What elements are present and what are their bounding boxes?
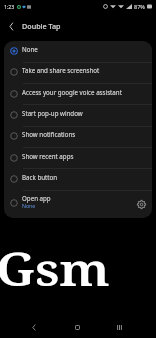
staticText: Back button: [22, 173, 58, 181]
staticText: 87%: [134, 3, 145, 10]
button[interactable]: Settings: [134, 197, 148, 211]
button[interactable]: Back: [23, 316, 45, 338]
button[interactable]: Show notifications: [4, 126, 152, 147]
staticText: Open app: [22, 194, 51, 202]
button[interactable]: Recents: [108, 316, 130, 338]
staticText: Gsm: [0, 238, 110, 299]
staticText: None: [22, 202, 36, 209]
button[interactable]: None: [4, 41, 152, 62]
button[interactable]: Start pop-up window: [4, 105, 152, 126]
staticText: Start pop-up window: [22, 109, 83, 117]
staticText: Access your google voice assistant: [22, 88, 122, 96]
button[interactable]: Open app: [4, 190, 152, 218]
button[interactable]: Home: [66, 316, 88, 338]
button[interactable]: Show recent apps: [4, 148, 152, 169]
button[interactable]: Back button: [4, 169, 152, 190]
staticText: Show notifications: [22, 130, 76, 138]
staticText: Show recent apps: [22, 152, 74, 160]
button[interactable]: Take and share screenshot: [4, 62, 152, 83]
staticText: 1:23: [4, 3, 15, 10]
button[interactable]: Access your google voice assistant: [4, 84, 152, 105]
button[interactable]: Back: [4, 19, 19, 34]
staticText: Double Tap: [22, 21, 61, 31]
staticText: None: [22, 45, 38, 53]
staticText: Take and share screenshot: [22, 66, 100, 74]
